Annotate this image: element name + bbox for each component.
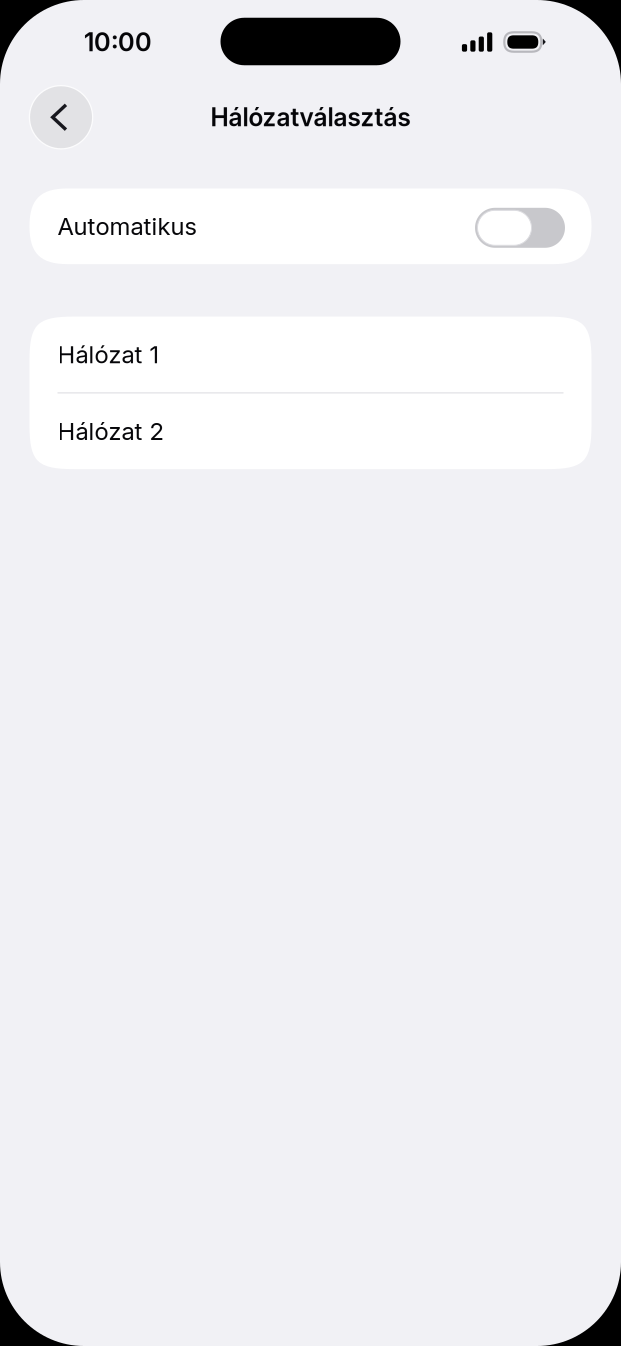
button[interactable]: Automatikus [29, 188, 591, 264]
button[interactable]: Back [29, 85, 93, 149]
button[interactable]: Hálózat 1 [29, 317, 591, 392]
staticText: Automatikus [57, 212, 196, 241]
button[interactable]: Hálózat 2 [29, 393, 591, 469]
staticText: Hálózat 1 [57, 340, 159, 369]
staticText: Hálózatválasztás [210, 102, 410, 132]
staticText: Hálózat 2 [57, 417, 163, 446]
staticText: 10:00 [84, 27, 152, 57]
